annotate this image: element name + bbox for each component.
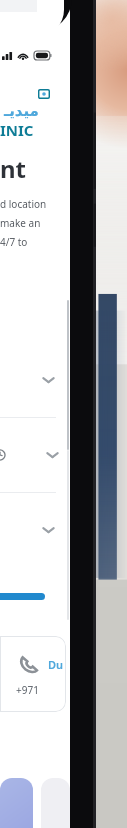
button[interactable]: Select option <box>0 343 62 417</box>
button[interactable]: Select option <box>0 418 62 492</box>
staticText: d location <box>0 197 47 211</box>
button[interactable]: Feature card <box>0 778 33 828</box>
staticText: 4/7 to <box>0 235 28 249</box>
staticText: nt <box>0 152 27 185</box>
staticText: INIC <box>0 120 34 140</box>
staticText: make an <box>0 216 41 230</box>
staticText: +971 80019 <box>16 683 66 697</box>
staticText: ميديـ <box>4 102 39 119</box>
staticText: Dub <box>48 657 66 672</box>
button[interactable]: Book appointment <box>0 593 45 600</box>
button[interactable]: Dub <box>0 636 66 712</box>
button[interactable]: Secondary card <box>41 778 70 828</box>
button[interactable]: Select option <box>0 493 62 567</box>
